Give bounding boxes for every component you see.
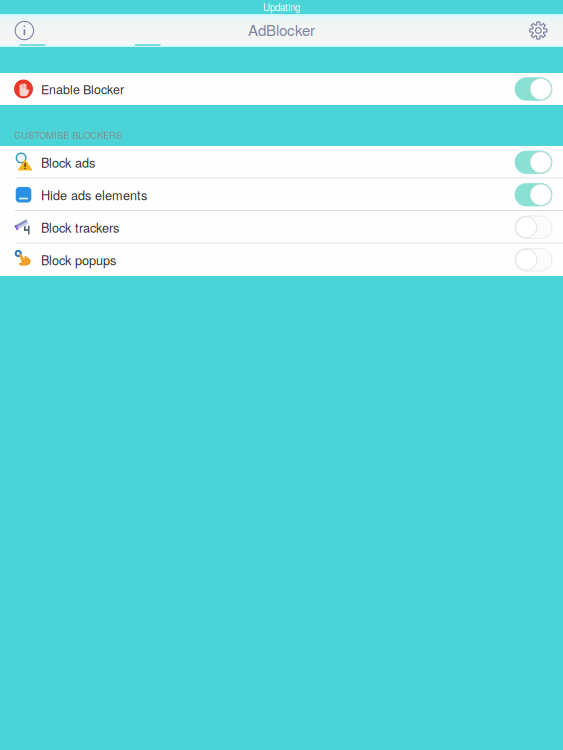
staticText: Updating <box>263 0 300 14</box>
staticText: CUSTOMISE BLOCKERS <box>14 128 122 141</box>
staticText: Block trackers <box>41 218 119 236</box>
button[interactable]: Block trackers <box>0 211 563 243</box>
button[interactable]: Enable Blocker <box>0 73 563 105</box>
staticText: AdBlocker <box>248 19 315 40</box>
button[interactable]: Block popups <box>0 243 563 276</box>
staticText: Block ads <box>41 153 95 171</box>
button[interactable]: Hide ads elements <box>0 178 563 211</box>
staticText: Block popups <box>41 251 116 269</box>
staticText: Enable Blocker <box>41 80 124 98</box>
button[interactable]: Info <box>0 14 67 47</box>
button[interactable]: Settings <box>495 14 563 47</box>
staticText: Hide ads elements <box>41 186 147 204</box>
button[interactable]: Block ads <box>0 146 563 178</box>
